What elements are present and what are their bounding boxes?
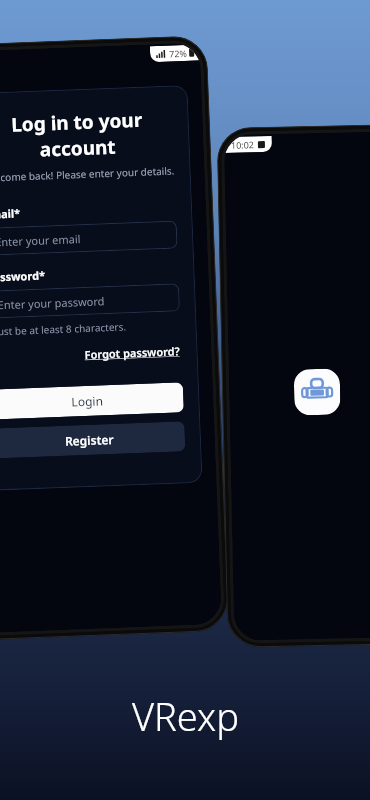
staticText: VRexp	[132, 690, 239, 742]
staticText: Password*	[0, 267, 46, 285]
staticText: 10:02	[231, 138, 255, 151]
staticText: Enter your email	[0, 231, 81, 249]
staticText: Email*	[0, 205, 21, 222]
button[interactable]: Forgot password?	[82, 341, 182, 364]
button[interactable]: Enter your email	[0, 220, 178, 256]
button[interactable]: Login	[0, 382, 184, 420]
button[interactable]: Register	[0, 421, 185, 459]
other: VRexp app icon	[294, 368, 341, 415]
staticText: Log in to your account	[0, 105, 174, 165]
staticText: Register	[65, 431, 114, 449]
staticText: 72%	[169, 47, 187, 60]
staticText: Login	[71, 392, 104, 409]
staticText: Welcome back! Please enter your details.	[0, 163, 175, 185]
staticText: Forgot password?	[84, 343, 180, 362]
staticText: Must be at least 8 characters.	[0, 319, 127, 339]
staticText: Enter your password	[0, 293, 105, 312]
button[interactable]: Enter your password	[0, 283, 180, 319]
